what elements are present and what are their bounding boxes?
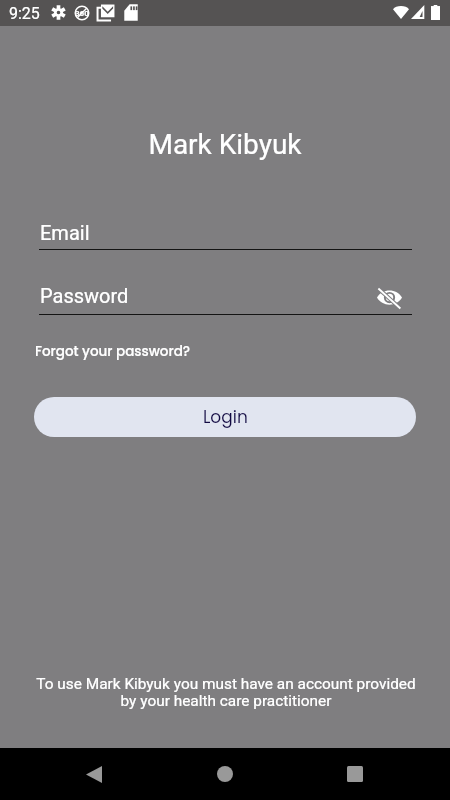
staticText: Email	[40, 221, 90, 244]
staticText: To use Mark Kibyuk you must have an acco…	[1, 675, 450, 710]
staticText: Mark Kibyuk	[0, 128, 450, 161]
button[interactable]: Recent apps	[331, 756, 379, 792]
staticText: Forgot your password?	[35, 342, 191, 361]
button[interactable]: Password	[39, 281, 369, 314]
button[interactable]: Email	[39, 218, 412, 250]
button[interactable]: Forgot your password?	[31, 338, 195, 365]
staticText: 360	[75, 9, 89, 18]
staticText: Login	[203, 405, 248, 429]
staticText: Password	[40, 284, 129, 307]
button[interactable]: Back	[70, 756, 118, 792]
button[interactable]: Show password	[374, 283, 404, 311]
button[interactable]: Home	[201, 756, 249, 792]
staticText: 9:25	[9, 4, 40, 23]
button[interactable]: Login	[34, 397, 416, 437]
